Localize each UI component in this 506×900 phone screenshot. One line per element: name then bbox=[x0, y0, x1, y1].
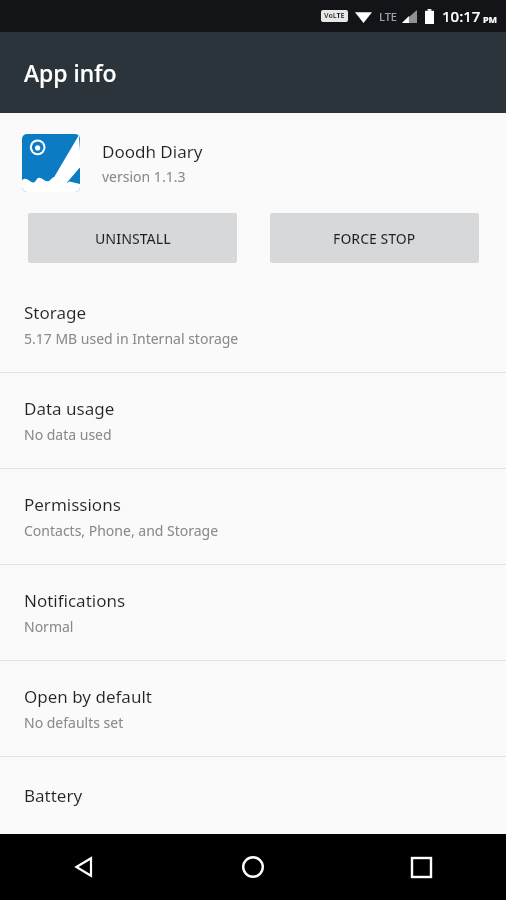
button[interactable]: UNINSTALL bbox=[28, 213, 237, 263]
staticText: version 1.1.3 bbox=[102, 167, 186, 186]
staticText: Open by default bbox=[24, 685, 152, 708]
staticText: Permissions bbox=[24, 493, 121, 516]
staticText: No data used bbox=[24, 425, 112, 444]
button[interactable]: Storage bbox=[0, 277, 506, 372]
staticText: 5.17 MB used in Internal storage bbox=[24, 329, 239, 348]
button[interactable]: Home bbox=[168, 834, 337, 900]
staticText: FORCE STOP bbox=[333, 229, 416, 248]
staticText: LTE bbox=[379, 9, 397, 24]
staticText: Normal bbox=[24, 617, 74, 636]
staticText: PM bbox=[483, 13, 498, 25]
staticText: Data usage bbox=[24, 397, 115, 420]
button[interactable]: Open by default bbox=[0, 661, 506, 756]
staticText: Notifications bbox=[24, 589, 126, 612]
staticText: Contacts, Phone, and Storage bbox=[24, 521, 219, 540]
button[interactable]: Back bbox=[0, 834, 168, 900]
staticText: UNINSTALL bbox=[95, 229, 171, 248]
staticText: Doodh Diary bbox=[102, 140, 203, 163]
staticText: App info bbox=[24, 57, 117, 88]
button[interactable]: Recent apps bbox=[337, 834, 506, 900]
button[interactable]: Battery bbox=[0, 757, 506, 834]
button[interactable]: FORCE STOP bbox=[270, 213, 479, 263]
button[interactable]: Notifications bbox=[0, 565, 506, 660]
button[interactable]: Doodh Diary bbox=[0, 113, 506, 213]
button[interactable]: Data usage bbox=[0, 373, 506, 468]
button[interactable]: Permissions bbox=[0, 469, 506, 564]
staticText: 10:17 bbox=[442, 6, 481, 26]
staticText: Battery bbox=[24, 784, 83, 807]
staticText: VoLTE bbox=[324, 11, 345, 21]
staticText: No defaults set bbox=[24, 713, 124, 732]
staticText: Storage bbox=[24, 301, 87, 324]
